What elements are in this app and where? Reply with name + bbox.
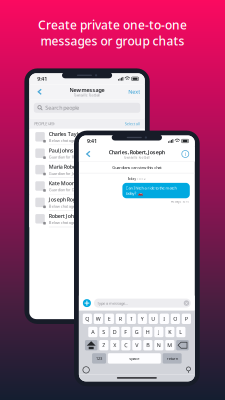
staticText: Select all: [125, 121, 140, 126]
staticText: Maria Roberts: [49, 163, 83, 170]
staticText: E: [108, 315, 111, 322]
staticText: Y: [141, 315, 144, 322]
staticText: Kate Moore: [49, 180, 77, 187]
staticText: Guardian for Daniel: [49, 187, 83, 192]
staticText: P: [185, 315, 188, 322]
button[interactable]: Back: [33, 85, 46, 99]
staticText: F: [124, 328, 127, 336]
staticText: C: [124, 342, 127, 349]
staticText: Message sent: [171, 200, 189, 203]
button[interactable]: Conversation info: [179, 148, 191, 160]
staticText: New message: [69, 86, 104, 93]
staticText: G: [135, 328, 139, 336]
staticText: J: [158, 328, 159, 336]
staticText: Townsville Football: [74, 94, 100, 97]
staticText: D: [113, 328, 117, 336]
staticText: K: [168, 328, 171, 336]
staticText: ×: [185, 300, 188, 307]
staticText: Today: [128, 177, 136, 181]
staticText: Z: [102, 342, 105, 349]
staticText: R: [119, 315, 122, 322]
staticText: Below chat age limit: [49, 203, 84, 209]
staticText: N: [157, 342, 161, 349]
button[interactable]: Select all: [125, 121, 140, 126]
staticText: Charles Taylor: [49, 130, 83, 137]
staticText: 9:41: [87, 137, 97, 145]
staticText: Joseph Rogers: [49, 196, 84, 203]
button[interactable]: Joseph Rogers: [29, 194, 145, 211]
staticText: A: [91, 328, 94, 336]
staticText: Type a message…: [97, 300, 128, 306]
staticText: Townsville Football: [124, 156, 150, 159]
staticText: 13:12: [137, 177, 146, 181]
staticText: Below chat age limit: [49, 220, 84, 225]
staticText: Search people: [45, 104, 79, 111]
staticText: Below chat age limit: [49, 138, 84, 143]
button[interactable]: Paul Johnson: [29, 145, 145, 162]
staticText: X: [113, 342, 116, 349]
staticText: return: [167, 356, 178, 361]
staticText: T: [130, 315, 133, 322]
staticText: Paul Johnson: [49, 147, 80, 154]
staticText: Guardian for Jack: [49, 171, 79, 176]
staticText: S: [102, 328, 105, 336]
staticText: messages or group chats: [40, 33, 184, 49]
staticText: Robert Johnson: [49, 212, 86, 219]
staticText: Create private one-to-one: [38, 17, 187, 33]
staticText: B: [146, 342, 149, 349]
button[interactable]: Back: [82, 148, 94, 160]
button[interactable]: Charles Taylor: [29, 129, 145, 145]
staticText: Next: [128, 88, 140, 95]
staticText: Q: [85, 315, 89, 322]
staticText: M: [167, 342, 172, 349]
staticText: V: [135, 342, 138, 349]
staticText: Guardian for Rebecca: [49, 154, 86, 160]
staticText: H: [146, 328, 150, 336]
staticText: I: [163, 315, 165, 322]
button[interactable]: Kate Moore: [29, 178, 145, 194]
staticText: Charles, Robert, Joseph: [109, 149, 165, 156]
staticText: i: [185, 150, 186, 158]
staticText: space: [129, 356, 139, 361]
staticText: W: [96, 315, 101, 322]
staticText: Guardians can view this chat: [112, 165, 161, 170]
staticText: PEOPLE (49): [34, 121, 54, 126]
button[interactable]: Maria Roberts: [29, 162, 145, 178]
button[interactable]: Robert Johnson: [29, 211, 145, 227]
staticText: 9:41: [37, 75, 47, 82]
staticText: U: [151, 315, 155, 322]
staticText: 123: [96, 356, 102, 361]
staticText: O: [173, 315, 177, 322]
button[interactable]: Next: [128, 85, 141, 99]
staticText: Can I hitch a ride to the match today? 🚗: [126, 185, 177, 196]
staticText: L: [179, 328, 182, 336]
